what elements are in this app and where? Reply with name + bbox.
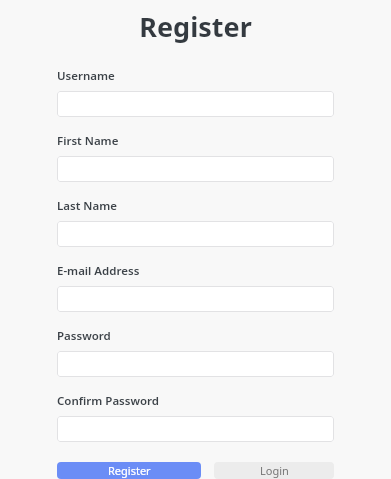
staticText: Login xyxy=(260,463,289,478)
button[interactable] xyxy=(57,91,334,117)
staticText: Confirm Password xyxy=(57,393,160,409)
staticText: First Name xyxy=(57,133,119,149)
button[interactable] xyxy=(57,416,334,442)
button[interactable]: Login xyxy=(214,462,334,479)
staticText: Password xyxy=(57,328,111,344)
staticText: E-mail Address xyxy=(57,263,140,279)
staticText: Last Name xyxy=(57,198,117,214)
button[interactable]: Register xyxy=(57,462,201,479)
button[interactable] xyxy=(57,156,334,182)
button[interactable] xyxy=(57,351,334,377)
button[interactable] xyxy=(57,221,334,247)
staticText: Register xyxy=(108,463,151,478)
staticText: Username xyxy=(57,68,115,84)
button[interactable] xyxy=(57,286,334,312)
staticText: Register xyxy=(0,8,391,45)
